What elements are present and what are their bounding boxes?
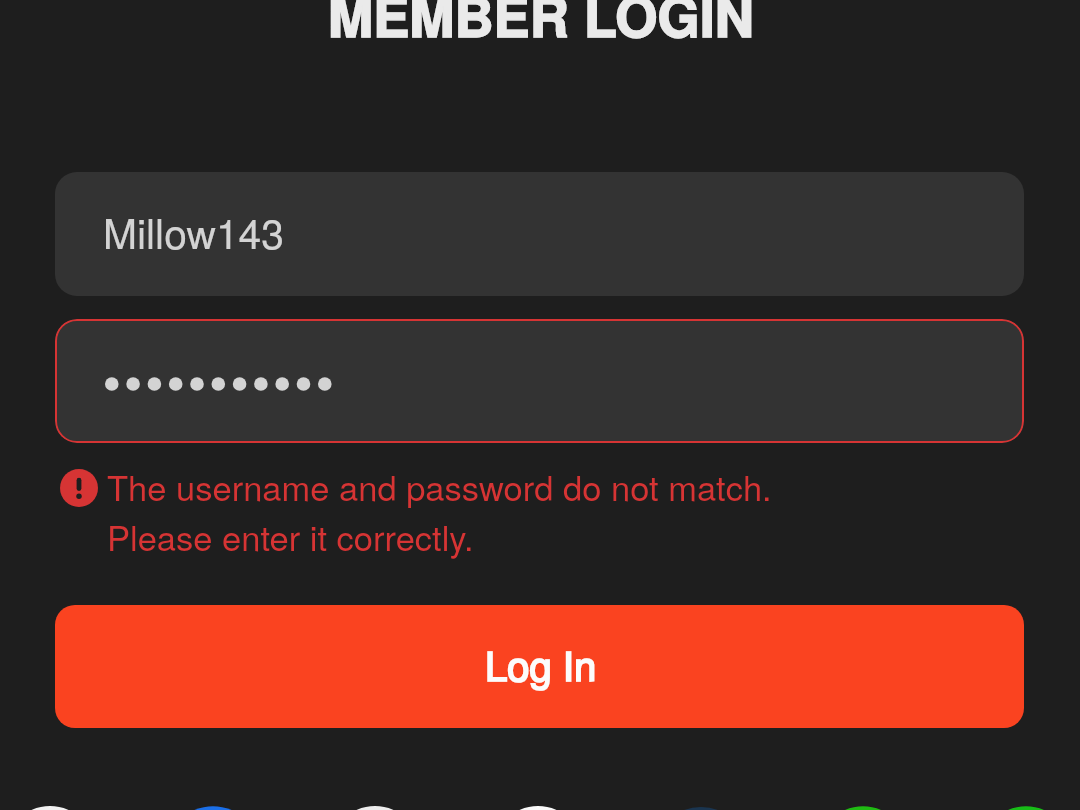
staticText: MEMBER LOGIN bbox=[328, 0, 754, 54]
button[interactable]: Sign in with LinkedIn bbox=[654, 800, 748, 810]
button[interactable]: Sign in with Google bbox=[491, 800, 585, 810]
button[interactable] bbox=[55, 319, 1024, 443]
staticText: The username and password do not match. bbox=[107, 461, 772, 510]
staticText: Log In bbox=[485, 635, 597, 692]
staticText: Millow143 bbox=[103, 202, 284, 260]
staticText: Log In bbox=[485, 635, 597, 692]
button[interactable]: Millow143 bbox=[55, 172, 1024, 296]
button[interactable]: Sign in with Twitter bbox=[328, 800, 422, 810]
staticText: MEMBER LOGIN bbox=[328, 0, 754, 54]
button[interactable]: Sign in with Line bbox=[979, 800, 1073, 810]
staticText: Please enter it correctly. bbox=[107, 511, 474, 560]
button[interactable]: Log In bbox=[55, 605, 1024, 728]
button[interactable]: Sign in with WeChat bbox=[816, 800, 910, 810]
other: Error bbox=[60, 469, 98, 507]
button[interactable]: Sign in with Apple bbox=[3, 800, 97, 810]
button[interactable]: Sign in with Facebook bbox=[166, 800, 260, 810]
